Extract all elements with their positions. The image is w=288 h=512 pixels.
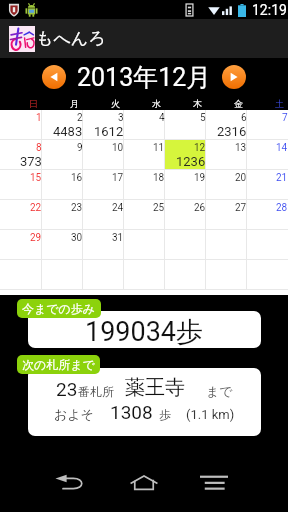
button[interactable]: 6 <box>206 110 247 140</box>
staticText: 水 <box>152 98 161 109</box>
staticText: 12 <box>194 142 206 154</box>
button[interactable]: 4 <box>124 110 165 140</box>
staticText: 27 <box>235 202 247 214</box>
staticText: 21 <box>276 172 288 184</box>
button[interactable]: 2 <box>42 110 83 140</box>
staticText: 2 <box>77 112 83 124</box>
staticText: 10 <box>112 142 124 154</box>
button[interactable]: 17 <box>83 170 124 200</box>
staticText: 23 <box>71 202 83 214</box>
staticText: 火 <box>111 98 120 109</box>
button[interactable] <box>42 260 83 290</box>
staticText: 1 <box>36 112 42 124</box>
staticText: 4 <box>159 112 165 124</box>
button[interactable]: 18 <box>124 170 165 200</box>
staticText: 番札所 <box>78 384 114 399</box>
staticText: 土 <box>275 98 284 109</box>
button[interactable]: Previous month <box>42 65 66 89</box>
staticText: 18 <box>153 172 165 184</box>
button[interactable]: 27 <box>206 200 247 230</box>
staticText: 15 <box>30 172 42 184</box>
button[interactable] <box>247 230 288 260</box>
button[interactable]: Back <box>48 459 92 503</box>
button[interactable]: 20 <box>206 170 247 200</box>
staticText: (1.1 km) <box>186 407 235 422</box>
staticText: 4483 <box>53 124 83 139</box>
staticText: もへんろ <box>36 28 106 49</box>
staticText: 12:19 <box>252 2 287 18</box>
button[interactable] <box>165 230 206 260</box>
staticText: 2013年12月 <box>77 62 212 93</box>
staticText: 8 <box>36 142 42 154</box>
button[interactable]: 29 <box>0 230 42 260</box>
staticText: 7 <box>282 112 288 124</box>
staticText: 13 <box>235 142 247 154</box>
staticText: 薬王寺 <box>125 375 185 400</box>
button[interactable]: 19 <box>165 170 206 200</box>
staticText: 20 <box>235 172 247 184</box>
button[interactable]: 30 <box>42 230 83 260</box>
staticText: 1612 <box>94 124 124 139</box>
button[interactable]: 24 <box>83 200 124 230</box>
button[interactable]: Home <box>122 459 166 503</box>
staticText: 28 <box>276 202 288 214</box>
staticText: 1236 <box>176 154 206 169</box>
button[interactable]: 26 <box>165 200 206 230</box>
button[interactable]: 23 <box>28 368 261 436</box>
staticText: 9 <box>77 142 83 154</box>
button[interactable] <box>83 260 124 290</box>
staticText: 今までの歩み <box>22 301 96 316</box>
staticText: 月 <box>70 98 79 109</box>
button[interactable]: Recent apps <box>192 459 236 503</box>
button[interactable]: 28 <box>247 200 288 230</box>
staticText: 373 <box>20 154 42 169</box>
button[interactable]: 21 <box>247 170 288 200</box>
staticText: 19 <box>194 172 206 184</box>
button[interactable]: Next month <box>222 65 246 89</box>
button[interactable]: 23 <box>42 200 83 230</box>
staticText: 29 <box>30 232 42 244</box>
staticText: 次の札所まで <box>22 357 95 372</box>
staticText: 199034歩 <box>85 315 204 348</box>
button[interactable]: 14 <box>247 140 288 170</box>
button[interactable] <box>206 230 247 260</box>
button[interactable]: 16 <box>42 170 83 200</box>
staticText: 26 <box>194 202 206 214</box>
staticText: 11 <box>153 142 165 154</box>
button[interactable]: 1 <box>0 110 42 140</box>
staticText: 14 <box>276 142 288 154</box>
button[interactable]: もへんろ <box>0 19 288 58</box>
button[interactable]: 31 <box>83 230 124 260</box>
staticText: 23 <box>56 378 78 400</box>
button[interactable]: 12 <box>165 140 206 170</box>
button[interactable]: 25 <box>124 200 165 230</box>
button[interactable]: 8 <box>0 140 42 170</box>
button[interactable]: 22 <box>0 200 42 230</box>
button[interactable]: 15 <box>0 170 42 200</box>
staticText: 歩 <box>159 407 171 422</box>
button[interactable]: 11 <box>124 140 165 170</box>
staticText: 22 <box>30 202 42 214</box>
button[interactable]: 199034歩 <box>28 311 261 348</box>
staticText: 16 <box>71 172 83 184</box>
staticText: 25 <box>153 202 165 214</box>
button[interactable]: 9 <box>42 140 83 170</box>
staticText: まで <box>206 383 233 399</box>
button[interactable]: 7 <box>247 110 288 140</box>
button[interactable] <box>124 230 165 260</box>
button[interactable] <box>0 260 42 290</box>
button[interactable]: 3 <box>83 110 124 140</box>
button[interactable] <box>165 260 206 290</box>
button[interactable]: 10 <box>83 140 124 170</box>
button[interactable]: 13 <box>206 140 247 170</box>
button[interactable] <box>206 260 247 290</box>
staticText: 木 <box>193 98 202 109</box>
button[interactable] <box>124 260 165 290</box>
button[interactable] <box>247 260 288 290</box>
staticText: 金 <box>234 98 243 109</box>
staticText: 1308 <box>110 401 153 423</box>
button[interactable]: 5 <box>165 110 206 140</box>
staticText: 3 <box>118 112 124 124</box>
staticText: 24 <box>112 202 124 214</box>
staticText: 31 <box>112 232 124 244</box>
